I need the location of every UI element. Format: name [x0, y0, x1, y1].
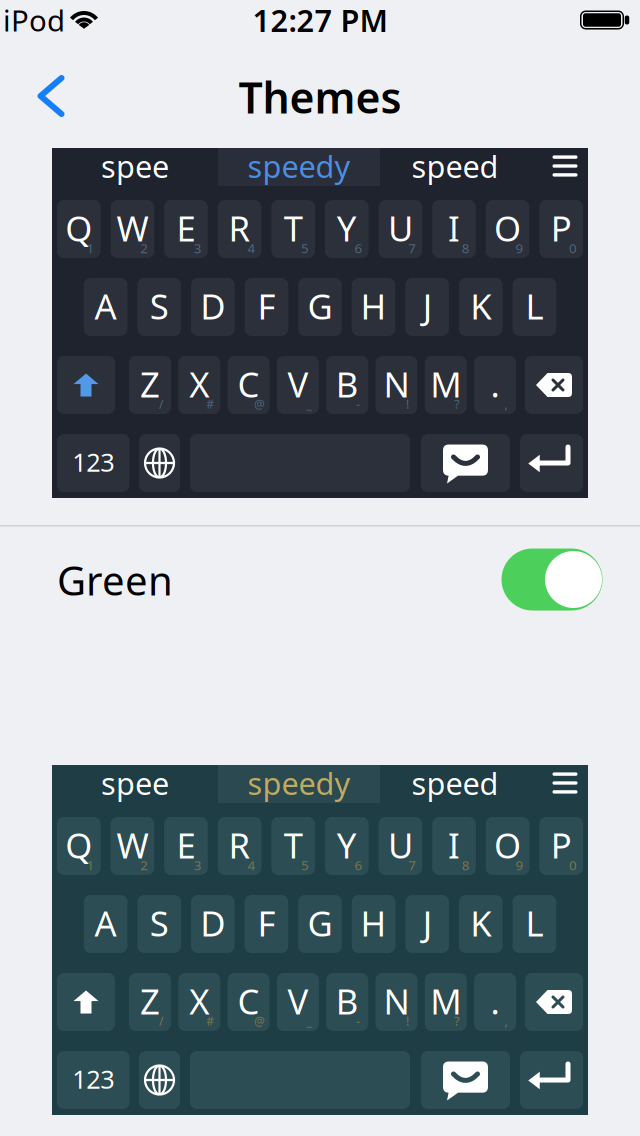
staticText: speedy	[247, 763, 350, 803]
staticText: 7	[408, 239, 416, 257]
staticText: /	[159, 396, 163, 412]
button[interactable]: Back	[28, 66, 73, 126]
staticText: Y	[337, 205, 357, 251]
staticText: 123	[72, 445, 114, 479]
staticText: .	[491, 361, 500, 407]
staticText: J	[423, 900, 432, 946]
staticText: 8	[462, 856, 470, 874]
staticText: R	[229, 822, 251, 868]
staticText: W	[116, 822, 148, 868]
staticText: /	[159, 1013, 163, 1029]
staticText: 9	[515, 239, 523, 257]
staticText: I	[448, 205, 460, 251]
staticText: D	[200, 900, 225, 946]
staticText: S	[150, 900, 169, 946]
staticText: 7	[408, 856, 416, 874]
staticText: C	[238, 978, 260, 1024]
staticText: 0	[569, 239, 577, 257]
staticText: 8	[462, 239, 470, 257]
staticText: R	[229, 205, 251, 251]
staticText: Themes	[238, 69, 401, 125]
staticText: X	[189, 361, 209, 407]
staticText: C	[238, 361, 260, 407]
staticText: _	[306, 1013, 311, 1029]
staticText: ?	[454, 396, 459, 412]
staticText: #	[206, 396, 214, 412]
staticText: 2	[140, 856, 148, 874]
staticText: U	[388, 205, 413, 251]
staticText: F	[257, 283, 275, 329]
staticText: -	[356, 1013, 360, 1029]
staticText: L	[525, 900, 543, 946]
staticText: G	[307, 283, 332, 329]
button[interactable]: Green theme	[52, 765, 588, 1115]
staticText: 1	[87, 856, 95, 874]
staticText: 5	[301, 856, 309, 874]
staticText: I	[448, 822, 460, 868]
staticText: W	[116, 205, 148, 251]
staticText: M	[430, 978, 461, 1024]
staticText: 0	[569, 856, 577, 874]
staticText: 9	[515, 856, 523, 874]
staticText: G	[307, 900, 332, 946]
staticText: Y	[337, 822, 357, 868]
staticText: P	[551, 205, 572, 251]
staticText: ,	[505, 396, 508, 412]
staticText: V	[287, 361, 308, 407]
staticText: J	[423, 283, 432, 329]
staticText: .	[491, 978, 500, 1024]
staticText: A	[95, 283, 117, 329]
staticText: T	[284, 822, 303, 868]
staticText: @	[254, 396, 265, 412]
staticText: Q	[65, 822, 92, 868]
staticText: Q	[65, 205, 92, 251]
staticText: 1	[87, 239, 95, 257]
staticText: E	[176, 822, 195, 868]
staticText: speed	[411, 146, 498, 186]
staticText: K	[470, 900, 491, 946]
staticText: iPod	[3, 0, 65, 39]
staticText: @	[254, 1013, 265, 1029]
staticText: H	[361, 900, 387, 946]
staticText: D	[200, 283, 225, 329]
staticText: N	[383, 978, 409, 1024]
staticText: 4	[247, 239, 255, 257]
staticText: ,	[505, 1013, 508, 1029]
button[interactable]: Dark theme	[52, 148, 588, 498]
staticText: H	[361, 283, 387, 329]
staticText: speedy	[247, 146, 350, 186]
staticText: T	[284, 205, 303, 251]
staticText: #	[206, 1013, 214, 1029]
staticText: spee	[101, 763, 169, 803]
staticText: -	[356, 396, 360, 412]
staticText: M	[430, 361, 461, 407]
staticText: O	[494, 822, 521, 868]
staticText: Green	[57, 553, 173, 606]
staticText: N	[383, 361, 409, 407]
staticText: 2	[140, 239, 148, 257]
staticText: B	[336, 361, 359, 407]
staticText: V	[287, 978, 308, 1024]
staticText: S	[150, 283, 169, 329]
staticText: U	[388, 822, 413, 868]
button[interactable]: Green	[501, 548, 602, 610]
staticText: !	[406, 1013, 409, 1029]
staticText: A	[95, 900, 117, 946]
staticText: O	[494, 205, 521, 251]
staticText: F	[257, 900, 275, 946]
staticText: 123	[72, 1062, 114, 1096]
staticText: 6	[355, 239, 363, 257]
staticText: K	[470, 283, 491, 329]
staticText: 3	[194, 856, 202, 874]
staticText: _	[306, 396, 311, 412]
staticText: 5	[301, 239, 309, 257]
staticText: 6	[355, 856, 363, 874]
staticText: P	[551, 822, 572, 868]
staticText: 12:27 PM	[252, 0, 387, 40]
staticText: Z	[140, 978, 160, 1024]
staticText: speed	[411, 763, 498, 803]
staticText: 3	[194, 239, 202, 257]
staticText: Z	[140, 361, 160, 407]
staticText: spee	[101, 146, 169, 186]
staticText: !	[406, 396, 409, 412]
